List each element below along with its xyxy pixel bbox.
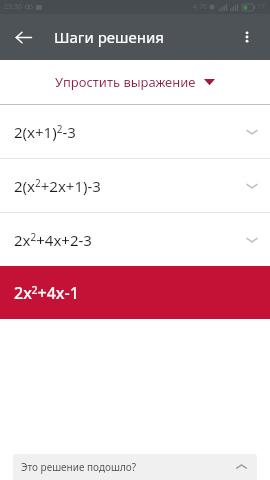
button[interactable]: 2(x2+2x+1)-3: [0, 159, 270, 212]
staticText: 2x2+4x-1: [14, 282, 79, 304]
staticText: 2(x+1)2-3: [14, 122, 76, 142]
button[interactable]: Назад: [0, 14, 46, 60]
staticText: 2x2+4x+2-3: [14, 230, 92, 250]
button[interactable]: Упростить выражение: [0, 60, 270, 104]
staticText: 4,76: [193, 2, 207, 12]
staticText: 2(x2+2x+1)-3: [14, 176, 101, 196]
staticText: Шаги решения: [54, 27, 164, 47]
button[interactable]: 2x2+4x+2-3: [0, 213, 270, 266]
button[interactable]: 2x2+4x-1: [0, 266, 270, 319]
staticText: 23:30: [4, 2, 22, 12]
staticText: 17: [257, 2, 266, 12]
button[interactable]: Это решение подошло?: [13, 454, 257, 480]
staticText: Упростить выражение: [55, 73, 196, 91]
button[interactable]: Меню: [224, 14, 270, 60]
staticText: Это решение подошло?: [21, 460, 137, 474]
button[interactable]: 2(x+1)2-3: [0, 105, 270, 158]
